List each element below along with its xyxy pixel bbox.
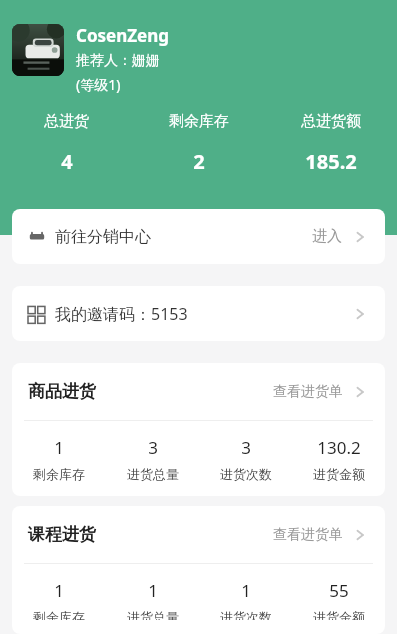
other: Open	[351, 228, 369, 246]
staticText: 我的邀请码：5153	[55, 303, 188, 325]
staticText: 进货总量	[127, 466, 179, 482]
staticText: CosenZeng	[76, 24, 170, 47]
other: Open	[351, 526, 369, 544]
button[interactable]: 商品进货	[12, 363, 385, 420]
staticText: 课程进货	[28, 524, 96, 545]
staticText: 3	[148, 436, 158, 459]
staticText: 进货次数	[220, 466, 272, 482]
staticText: (等级1)	[76, 75, 121, 94]
staticText: 2	[193, 148, 205, 175]
button[interactable]: 前往分销中心	[12, 209, 385, 264]
staticText: 1	[54, 436, 64, 459]
staticText: 55	[329, 579, 349, 602]
staticText: 总进货额	[301, 112, 361, 131]
staticText: 进货次数	[220, 609, 272, 620]
staticText: 1	[148, 579, 158, 602]
staticText: 3	[241, 436, 251, 459]
staticText: 进货总量	[127, 609, 179, 620]
button[interactable]: 我的邀请码：5153	[12, 286, 385, 341]
staticText: 推荐人：姗姗	[76, 52, 160, 70]
staticText: 查看进货单	[273, 526, 343, 544]
staticText: 总进货	[44, 112, 89, 131]
other: Open	[351, 383, 369, 401]
staticText: 185.2	[305, 148, 357, 175]
staticText: 剩余库存	[169, 112, 229, 131]
staticText: 进入	[312, 227, 342, 246]
staticText: 1	[54, 579, 64, 602]
staticText: 剩余库存	[33, 466, 85, 482]
staticText: 进货金额	[313, 609, 365, 620]
staticText: 商品进货	[28, 381, 96, 402]
button[interactable]: 课程进货	[12, 506, 385, 563]
other: Open	[351, 305, 369, 323]
staticText: 1	[241, 579, 251, 602]
staticText: 前往分销中心	[55, 227, 151, 247]
staticText: 剩余库存	[33, 609, 85, 620]
staticText: 进货金额	[313, 466, 365, 482]
staticText: 查看进货单	[273, 383, 343, 401]
staticText: 4	[61, 148, 73, 175]
button[interactable]: CosenZeng	[12, 24, 170, 94]
staticText: 130.2	[317, 436, 361, 459]
